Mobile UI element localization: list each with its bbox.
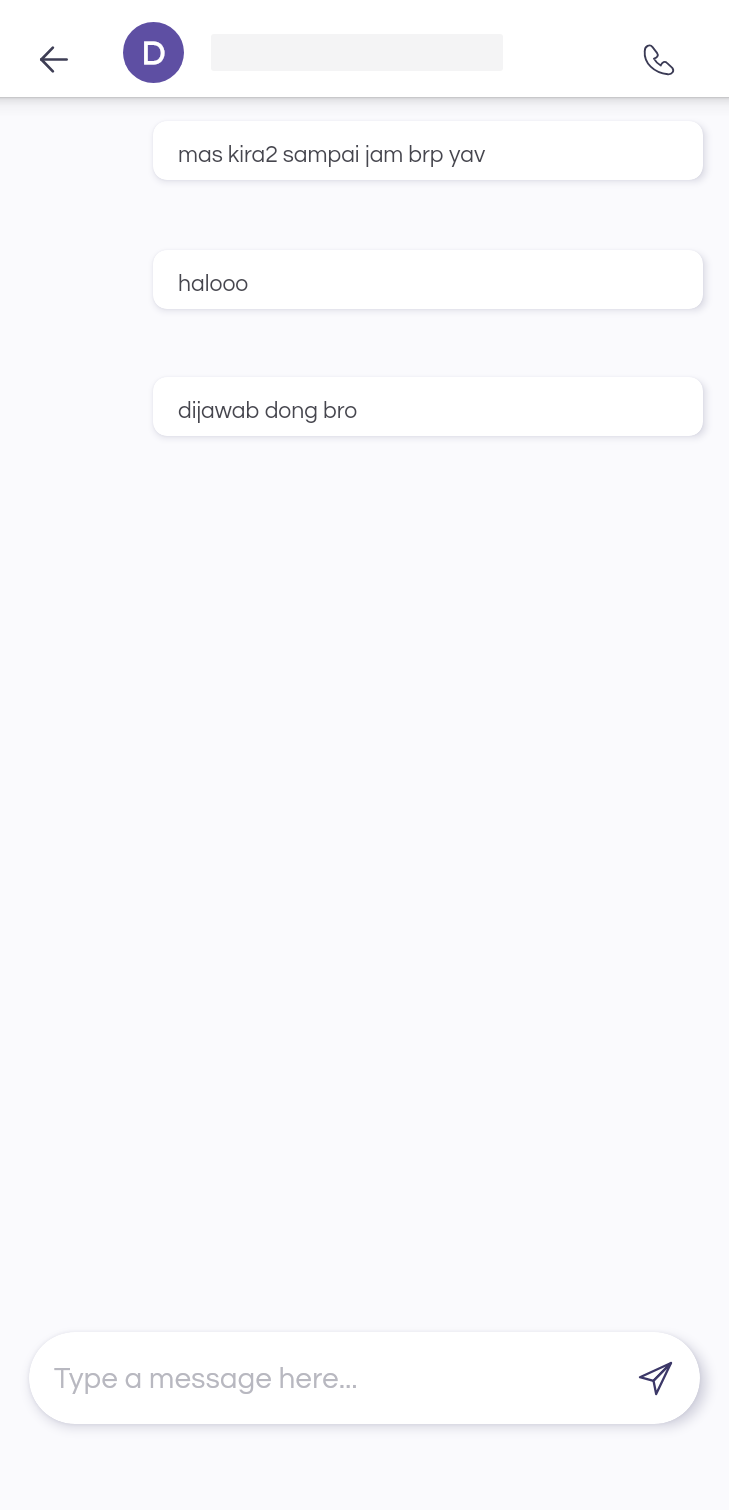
- staticText: mas kira2 sampai jam brp yav: [178, 143, 486, 167]
- staticText: D: [142, 37, 166, 71]
- staticText: Type a message here...: [54, 1364, 358, 1394]
- button[interactable]: mas kira2 sampai jam brp yav: [153, 121, 703, 180]
- button[interactable]: D: [123, 22, 184, 83]
- button[interactable]: Type a message here...: [29, 1332, 700, 1424]
- button[interactable]: Back: [10, 15, 98, 103]
- staticText: halooo: [178, 272, 249, 296]
- button[interactable]: Call: [614, 16, 701, 103]
- button[interactable]: halooo: [153, 250, 703, 309]
- button[interactable]: dijawab dong bro: [153, 377, 703, 436]
- button[interactable]: Send: [630, 1353, 680, 1403]
- staticText: dijawab dong bro: [178, 399, 358, 423]
